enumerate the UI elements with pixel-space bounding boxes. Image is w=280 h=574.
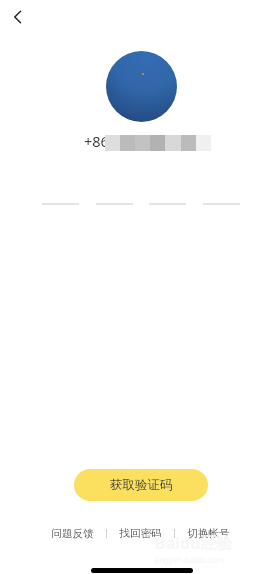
- button[interactable]: 切换帐号: [175, 524, 242, 543]
- staticText: Baidu经验: [155, 532, 233, 554]
- staticText: +86: [84, 131, 109, 151]
- button[interactable]: 问题反馈: [39, 524, 106, 543]
- button[interactable]: Code digit 2: [96, 181, 133, 205]
- staticText: 问题反馈: [51, 527, 94, 540]
- staticText: 获取验证码: [110, 477, 173, 493]
- button[interactable]: Back: [4, 3, 32, 31]
- button[interactable]: Code digit 1: [42, 181, 79, 205]
- button[interactable]: Code digit 3: [149, 181, 186, 205]
- staticText: 切换帐号: [187, 527, 230, 540]
- button[interactable]: Profile picture: [106, 51, 177, 122]
- button[interactable]: 获取验证码: [74, 469, 208, 501]
- staticText: jingyan.baidu.com: [155, 554, 225, 565]
- button[interactable]: Code digit 4: [203, 181, 240, 205]
- staticText: 找回密码: [119, 527, 162, 540]
- button[interactable]: 找回密码: [107, 524, 174, 543]
